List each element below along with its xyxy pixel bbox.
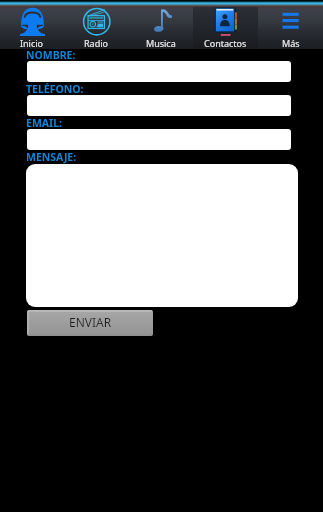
staticText: TELÉFONO: bbox=[26, 82, 84, 96]
staticText: MENSAJE: bbox=[26, 150, 77, 164]
button[interactable] bbox=[27, 95, 291, 116]
button[interactable] bbox=[27, 61, 291, 82]
staticText: EMAIL: bbox=[26, 116, 62, 130]
staticText: Inicio bbox=[20, 37, 44, 49]
staticText: Radio bbox=[84, 37, 108, 49]
button[interactable]: Musica bbox=[128, 0, 193, 49]
staticText: ENVIAR bbox=[69, 314, 112, 330]
button[interactable]: ENVIAR bbox=[27, 310, 153, 336]
button[interactable]: Inicio bbox=[0, 0, 64, 49]
staticText: Musica bbox=[146, 37, 176, 49]
button[interactable]: Contactos bbox=[193, 0, 258, 49]
staticText: Contactos bbox=[204, 37, 247, 49]
button[interactable]: Más bbox=[258, 0, 323, 49]
button[interactable]: Radio bbox=[64, 0, 128, 49]
button[interactable] bbox=[27, 129, 291, 150]
staticText: Más bbox=[282, 37, 300, 49]
button[interactable] bbox=[26, 164, 298, 307]
staticText: NOMBRE: bbox=[26, 48, 76, 62]
